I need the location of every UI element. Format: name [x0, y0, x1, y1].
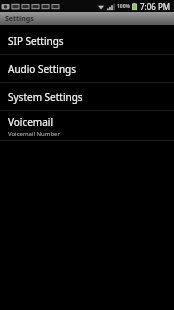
button[interactable]: System Settings: [0, 83, 174, 110]
staticText: Voicemail: [8, 115, 53, 129]
staticText: 100%: [117, 3, 131, 10]
staticText: Voicemail Number: [8, 130, 60, 138]
button[interactable]: SIP Settings: [0, 27, 174, 54]
staticText: 7:06 PM: [140, 1, 171, 12]
staticText: Audio Settings: [8, 62, 76, 76]
button[interactable]: Audio Settings: [0, 55, 174, 82]
staticText: System Settings: [8, 90, 83, 104]
staticText: Settings: [5, 14, 34, 24]
button[interactable]: Voicemail: [0, 111, 174, 140]
staticText: SIP Settings: [8, 34, 64, 48]
